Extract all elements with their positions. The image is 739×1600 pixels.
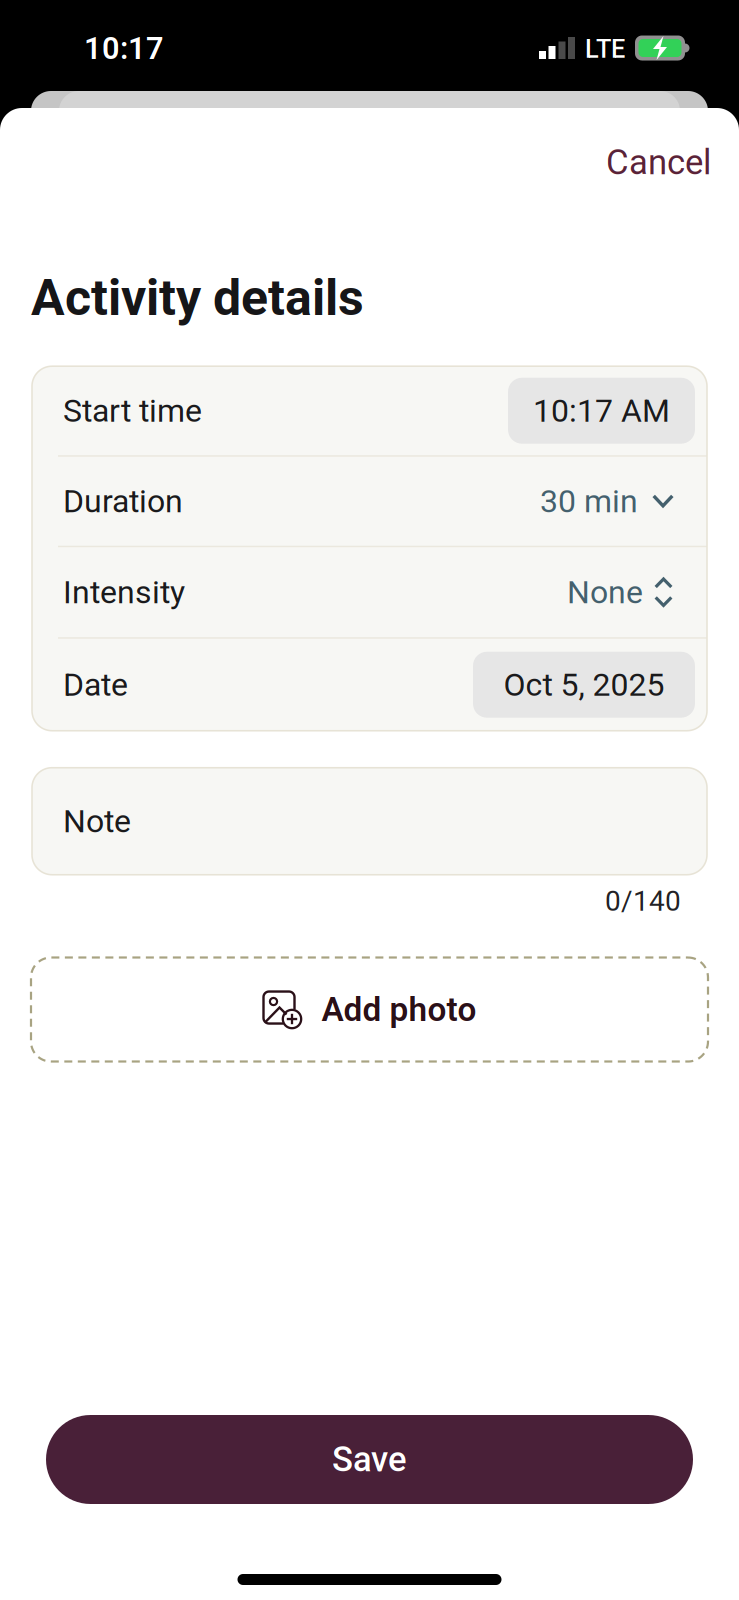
staticText: Date xyxy=(63,666,128,703)
staticText: 10:17 xyxy=(84,30,164,66)
button[interactable]: Oct 5, 2025 xyxy=(473,652,695,718)
staticText: Oct 5, 2025 xyxy=(503,666,664,703)
staticText: None xyxy=(567,573,643,611)
staticText: 10:17 AM xyxy=(533,392,670,429)
staticText: 30 min xyxy=(540,482,638,520)
staticText: Activity details xyxy=(31,269,364,327)
staticText: Save xyxy=(332,1439,407,1480)
button[interactable]: Note xyxy=(0,768,739,875)
staticText: Duration xyxy=(63,482,183,520)
button[interactable]: 30 min xyxy=(519,457,695,545)
staticText: Start time xyxy=(63,392,202,429)
button[interactable]: Save xyxy=(0,1415,739,1504)
staticText: Add photo xyxy=(321,990,476,1029)
button[interactable]: 10:17 AM xyxy=(508,378,695,444)
button[interactable]: Add photo xyxy=(0,957,739,1061)
button[interactable]: Cancel xyxy=(575,123,739,202)
staticText: Note xyxy=(63,802,131,840)
staticText: Intensity xyxy=(63,573,185,611)
staticText: Cancel xyxy=(606,142,711,183)
staticText: 0/140 xyxy=(605,885,681,917)
button[interactable]: None xyxy=(545,555,695,629)
staticText: LTE xyxy=(585,34,625,64)
